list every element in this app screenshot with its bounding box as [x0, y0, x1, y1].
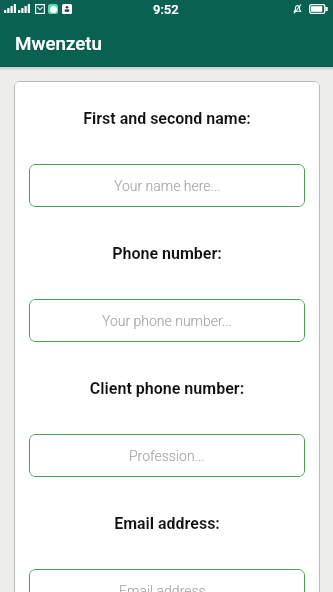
staticText: Client phone number:: [29, 379, 305, 398]
staticText: 9:52: [153, 2, 179, 17]
button[interactable]: First and second name:: [29, 164, 305, 207]
button[interactable]: Email address:: [29, 569, 305, 592]
staticText: Email address...: [119, 583, 216, 592]
staticText: Profession...: [129, 448, 205, 464]
staticText: Your name here...: [114, 178, 221, 194]
staticText: Phone number:: [29, 244, 305, 263]
staticText: Your phone number...: [102, 313, 232, 329]
staticText: Mwenzetu: [15, 33, 103, 55]
staticText: First and second name:: [29, 109, 305, 128]
button[interactable]: Phone number:: [29, 299, 305, 342]
button[interactable]: Client phone number:: [29, 434, 305, 477]
staticText: Email address:: [29, 514, 305, 533]
